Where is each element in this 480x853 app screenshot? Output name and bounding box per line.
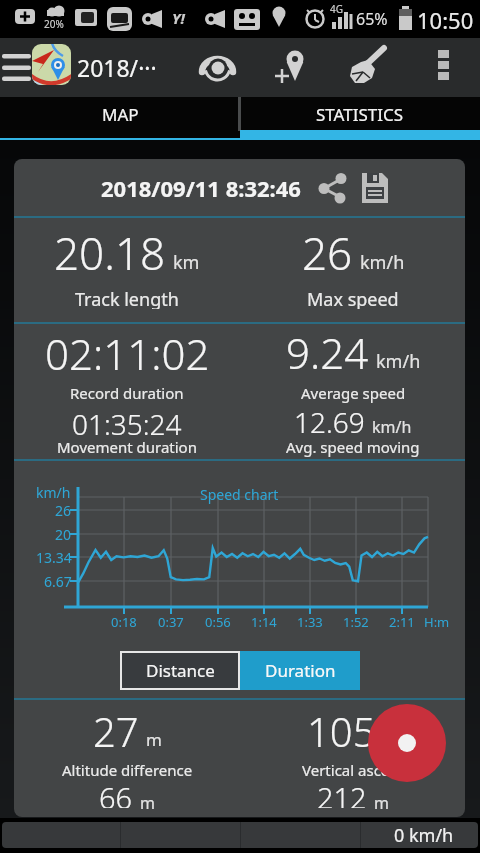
staticText: 1:14 xyxy=(251,613,277,631)
staticText: Y! xyxy=(172,8,185,28)
staticText: km/h xyxy=(376,349,421,374)
staticText: 27 xyxy=(93,704,139,750)
staticText: 20 xyxy=(55,525,72,544)
staticText: 2018/09/11 8:32:46 xyxy=(101,173,301,203)
button[interactable]: Distance xyxy=(122,653,238,688)
staticText: H:m xyxy=(424,613,450,631)
button[interactable] xyxy=(198,48,238,88)
button[interactable] xyxy=(426,44,460,92)
staticText: Duration xyxy=(265,659,336,682)
staticText: 2018/··· xyxy=(77,52,157,83)
staticText: Max speed xyxy=(307,287,399,309)
button[interactable]: STATISTICS xyxy=(240,97,480,140)
staticText: 26 xyxy=(55,501,72,520)
staticText: km/h xyxy=(360,250,405,275)
button[interactable] xyxy=(312,168,354,208)
staticText: Avg. speed moving xyxy=(286,437,420,457)
staticText: Movement duration xyxy=(57,437,197,457)
button[interactable] xyxy=(368,704,446,782)
staticText: 20.18 xyxy=(54,223,166,275)
staticText: 01:35:24 xyxy=(72,405,182,435)
staticText: Distance xyxy=(146,659,215,682)
staticText: STATISTICS xyxy=(316,103,404,126)
staticText: Altitude difference xyxy=(62,760,193,780)
staticText: m xyxy=(146,728,162,751)
staticText: 13.34 xyxy=(36,548,72,567)
staticText: 0:56 xyxy=(205,613,231,631)
staticText: Record duration xyxy=(70,383,184,403)
button[interactable] xyxy=(344,46,390,88)
staticText: 20% xyxy=(44,17,64,31)
staticText: 212 xyxy=(317,778,367,808)
staticText: MAP xyxy=(102,103,139,126)
staticText: km xyxy=(173,250,200,275)
button[interactable] xyxy=(356,168,394,208)
staticText: 0:37 xyxy=(158,613,184,631)
staticText: 65% xyxy=(356,8,388,30)
staticText: 0 km/h xyxy=(394,823,454,848)
staticText: Vertical ascent xyxy=(302,760,404,780)
staticText: km/h xyxy=(36,483,71,502)
staticText: 2:11 xyxy=(389,613,415,631)
staticText: km/h xyxy=(372,416,412,438)
staticText: 10:50 xyxy=(417,5,474,35)
button[interactable] xyxy=(0,46,34,90)
button[interactable]: Duration xyxy=(240,651,360,690)
button[interactable]: MAP xyxy=(0,97,240,140)
staticText: 1:33 xyxy=(297,613,323,631)
staticText: 66 xyxy=(99,778,133,808)
staticText: 12.69 xyxy=(294,403,365,433)
staticText: m xyxy=(374,792,389,814)
staticText: Average speed xyxy=(301,383,406,403)
staticText: 105 xyxy=(307,704,376,750)
staticText: 4G xyxy=(330,2,343,16)
staticText: 26 xyxy=(302,223,353,275)
staticText: 9.24 xyxy=(286,324,369,372)
button[interactable] xyxy=(271,48,309,88)
staticText: 6.67 xyxy=(44,572,72,591)
staticText: 1:52 xyxy=(343,613,369,631)
staticText: Track length xyxy=(75,287,179,309)
staticText: m xyxy=(140,792,155,814)
staticText: m xyxy=(383,728,399,751)
staticText: Speed chart xyxy=(200,485,279,504)
staticText: 02:11:02 xyxy=(45,325,210,373)
staticText: 0:18 xyxy=(111,613,137,631)
